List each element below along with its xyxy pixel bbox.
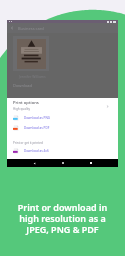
staticText: Download as PDF [24,126,50,130]
staticText: High quality [13,107,31,111]
staticText: Business card [18,26,44,31]
staticText: Print or get it printed [13,141,43,145]
button[interactable]: Download as 4x6 [7,147,118,155]
staticText: Print options [13,100,39,106]
button[interactable]: Download as PNG [7,114,118,122]
staticText: Download [13,83,33,88]
button[interactable]: More [106,105,109,108]
button[interactable]: Prints [70,157,79,166]
staticText: Download as 4x6 [24,149,49,153]
button[interactable]: Back [10,26,14,30]
staticText: Download as PNG [24,116,51,120]
button[interactable]: Designs [46,157,55,166]
staticText: Print or download in high resolution as … [0,201,125,236]
button[interactable]: Account [94,157,103,166]
button[interactable]: Download as PDF [7,124,118,132]
button[interactable]: Back [33,162,36,165]
staticText: Jennifer Williams [19,74,46,79]
button[interactable]: Cards [22,157,31,166]
